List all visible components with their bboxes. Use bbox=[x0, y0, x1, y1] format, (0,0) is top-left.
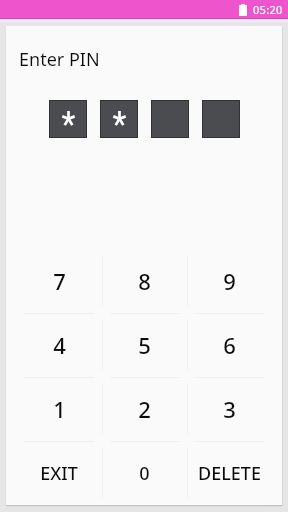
staticText: 6 bbox=[223, 330, 236, 360]
button[interactable]: 1 bbox=[16, 377, 102, 441]
staticText: 05:20 bbox=[253, 2, 283, 17]
staticText: 2 bbox=[138, 394, 151, 424]
staticText: 5 bbox=[138, 330, 151, 360]
button[interactable]: EXIT bbox=[16, 441, 102, 505]
staticText: 4 bbox=[53, 330, 66, 360]
staticText: DELETE bbox=[198, 461, 261, 486]
staticText: 0 bbox=[139, 461, 150, 486]
button[interactable]: 9 bbox=[187, 249, 272, 313]
staticText: 3 bbox=[223, 394, 236, 424]
staticText: 9 bbox=[223, 266, 236, 296]
button[interactable]: 4 bbox=[16, 313, 102, 377]
staticText: 8 bbox=[138, 266, 151, 296]
staticText: Enter PIN bbox=[19, 47, 100, 72]
staticText: 7 bbox=[53, 266, 66, 296]
button[interactable]: 8 bbox=[102, 249, 187, 313]
button[interactable]: DELETE bbox=[187, 441, 272, 505]
button[interactable]: 6 bbox=[187, 313, 272, 377]
button[interactable]: 5 bbox=[102, 313, 187, 377]
staticText: 1 bbox=[53, 394, 66, 424]
button[interactable]: 2 bbox=[102, 377, 187, 441]
staticText: EXIT bbox=[40, 461, 78, 486]
button[interactable]: 3 bbox=[187, 377, 272, 441]
button[interactable]: 7 bbox=[16, 249, 102, 313]
button[interactable]: 0 bbox=[102, 441, 187, 505]
